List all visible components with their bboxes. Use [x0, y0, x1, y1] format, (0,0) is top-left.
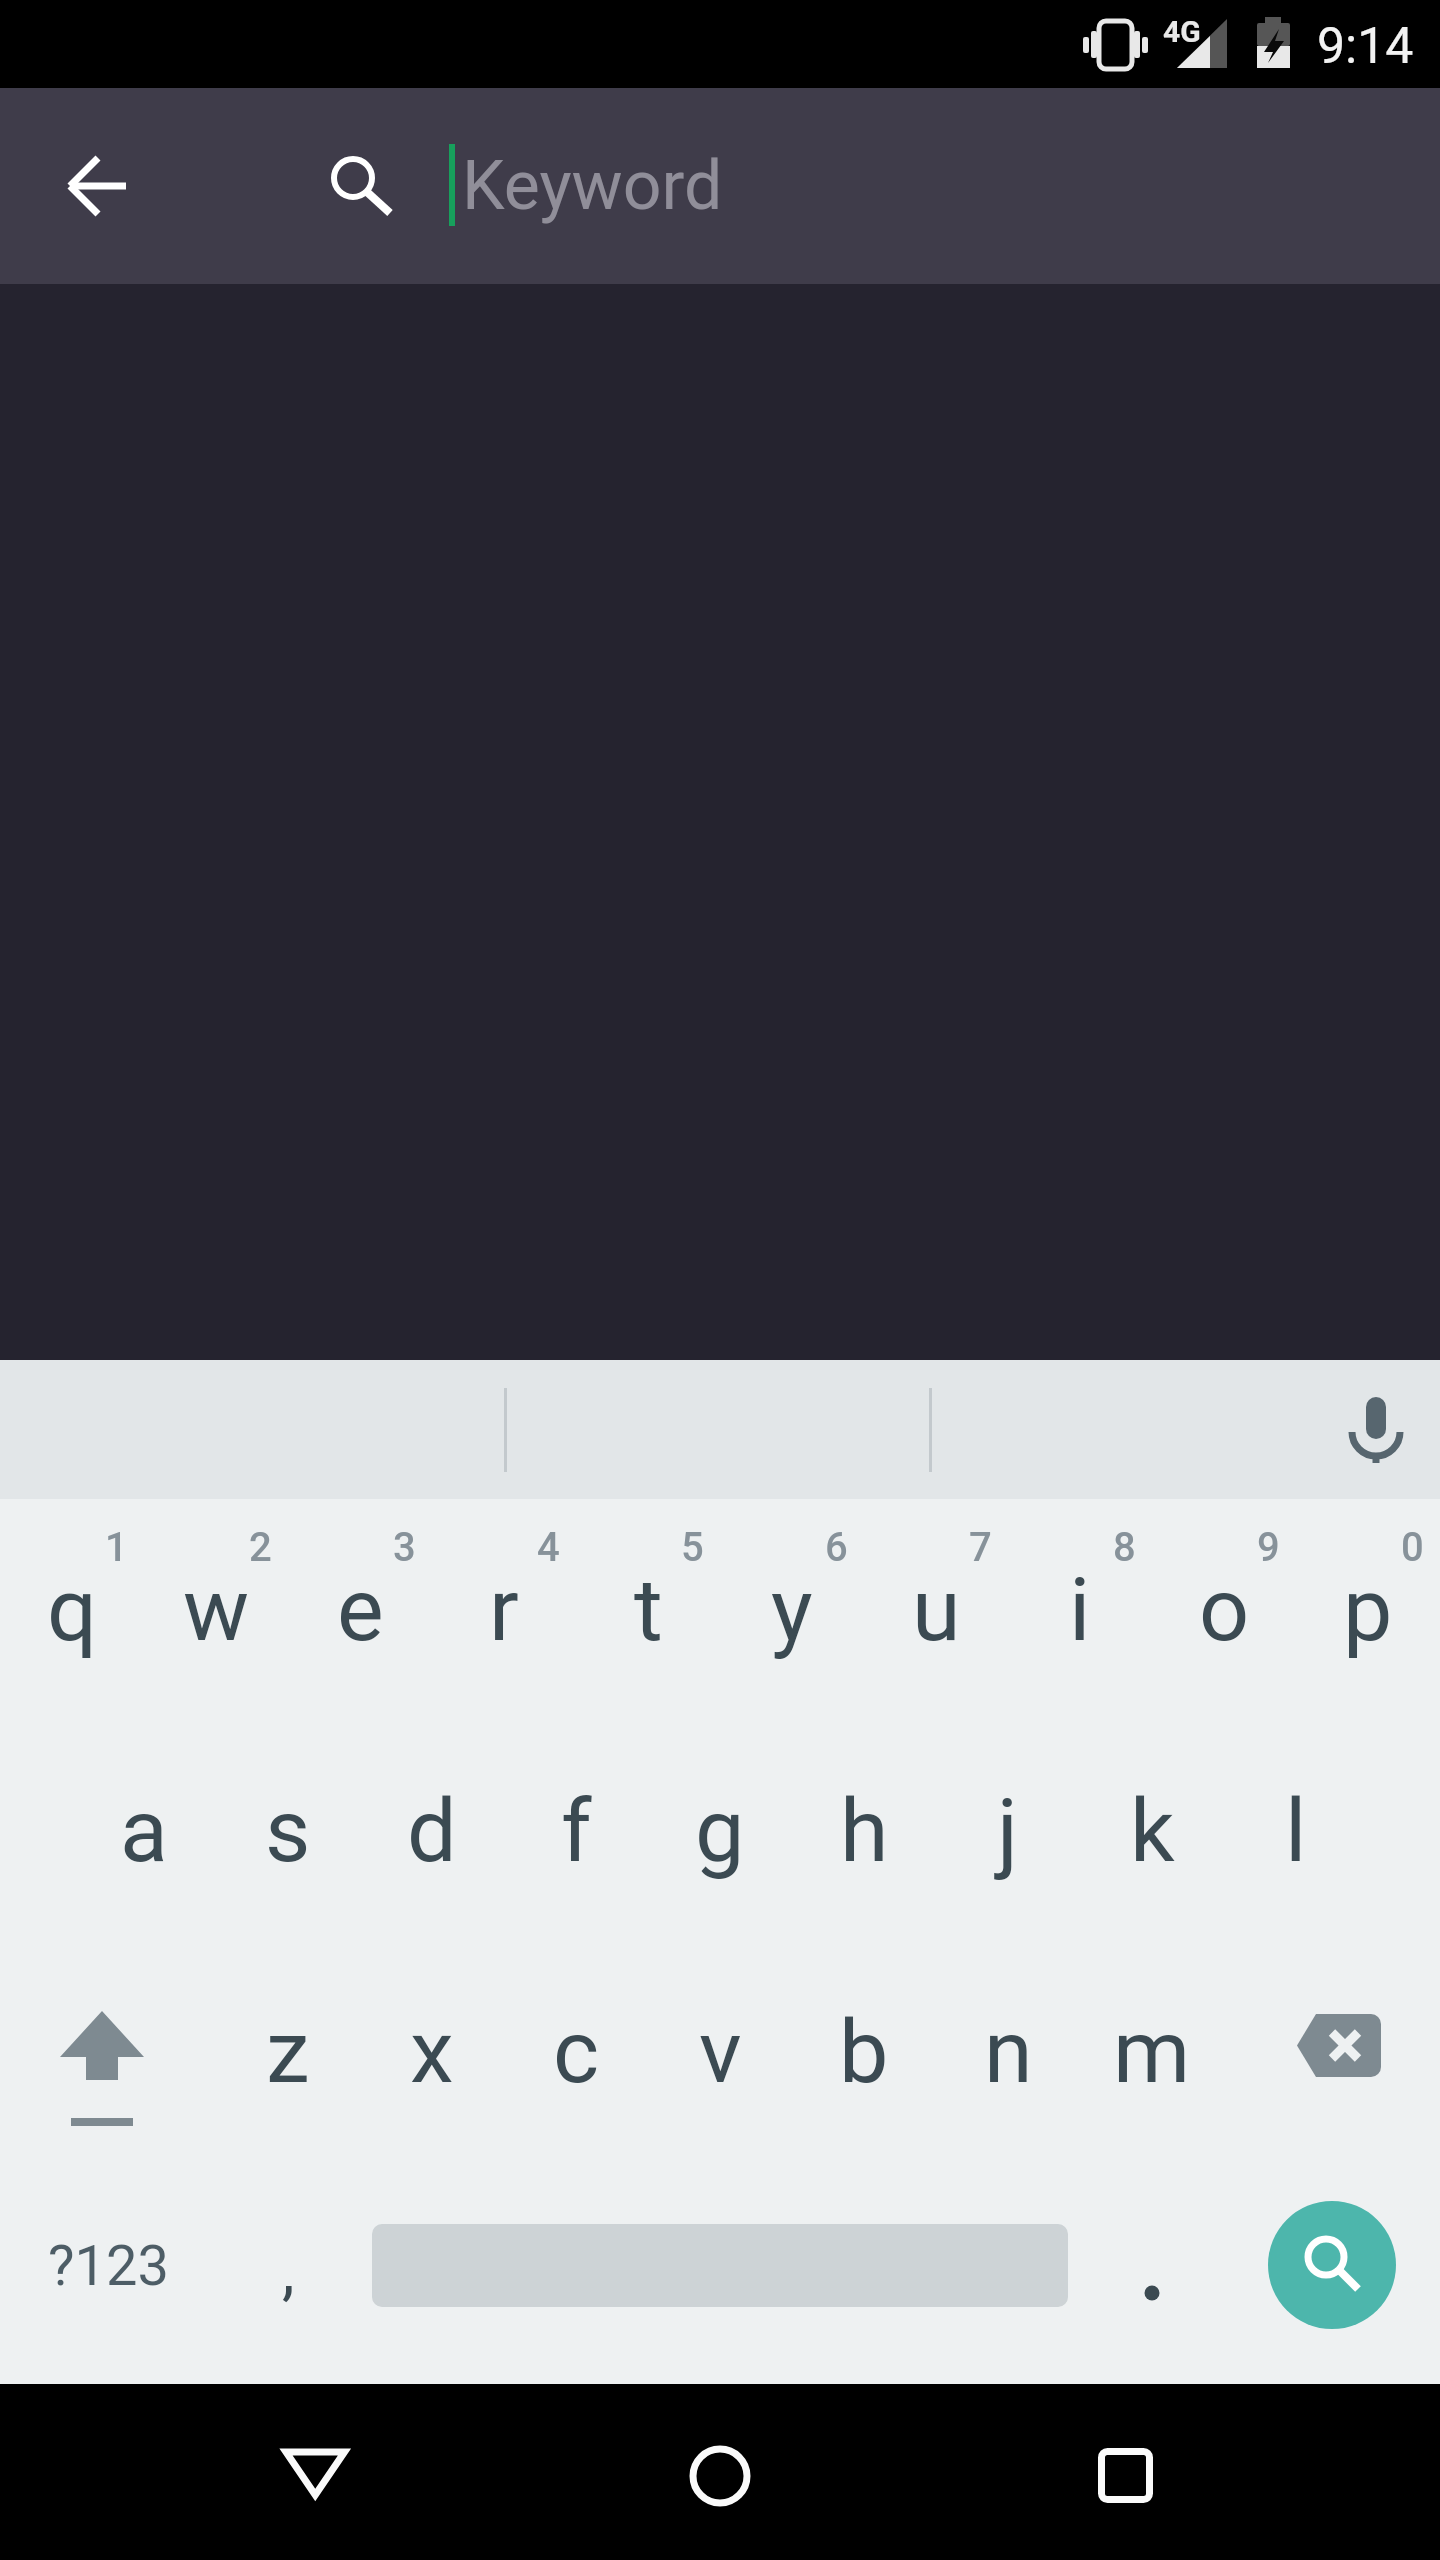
staticText: b [839, 2000, 889, 2103]
staticText: i [1069, 1558, 1091, 1661]
button[interactable]: , [216, 2162, 360, 2384]
button[interactable]: c [504, 1941, 648, 2162]
staticText: 7 [969, 1524, 992, 1571]
staticText: c [553, 2000, 600, 2103]
staticText: 4 [537, 1524, 560, 1571]
staticText: 0 [1401, 1524, 1424, 1571]
staticText: , [282, 2234, 295, 2309]
staticText: k [1130, 1779, 1175, 1882]
button[interactable]: ?123 [0, 2162, 216, 2384]
staticText: 9 [1257, 1524, 1280, 1571]
staticText: 4G [1163, 14, 1201, 49]
button[interactable]: e [288, 1499, 432, 1720]
button[interactable]: b [792, 1941, 936, 2162]
button[interactable]: w [144, 1499, 288, 1720]
button[interactable]: g [648, 1720, 792, 1941]
staticText: 3 [393, 1524, 416, 1571]
staticText: d [407, 1779, 457, 1882]
staticText: 8 [1113, 1524, 1136, 1571]
button[interactable]: y [720, 1499, 864, 1720]
button[interactable] [0, 1941, 216, 2162]
button[interactable]: x [360, 1941, 504, 2162]
button[interactable]: i [1008, 1499, 1152, 1720]
staticText: v [699, 2000, 742, 2103]
staticText: 1 [105, 1524, 128, 1571]
button[interactable] [1268, 2201, 1396, 2329]
staticText: m [1113, 2000, 1191, 2103]
button[interactable]: a [72, 1720, 216, 1941]
staticText: x [410, 2000, 454, 2103]
staticText: 9:14 [1317, 17, 1414, 76]
button[interactable]: q [0, 1499, 144, 1720]
staticText: s [265, 1779, 311, 1882]
button[interactable] [1080, 2162, 1224, 2384]
button[interactable] [1045, 2395, 1205, 2555]
button[interactable]: p [1296, 1499, 1440, 1720]
button[interactable]: l [1224, 1720, 1368, 1941]
button[interactable]: o [1152, 1499, 1296, 1720]
staticText: t [634, 1558, 663, 1661]
staticText: e [337, 1558, 384, 1661]
staticText: o [1199, 1558, 1250, 1661]
button[interactable] [1326, 1380, 1426, 1480]
button[interactable]: h [792, 1720, 936, 1941]
button[interactable]: j [936, 1720, 1080, 1941]
staticText: f [561, 1779, 592, 1882]
button[interactable]: t [576, 1499, 720, 1720]
staticText: g [695, 1779, 745, 1882]
button[interactable]: s [216, 1720, 360, 1941]
staticText: l [1285, 1779, 1307, 1882]
button[interactable]: v [648, 1941, 792, 2162]
staticText: y [771, 1558, 813, 1661]
button[interactable]: d [360, 1720, 504, 1941]
staticText: 5 [681, 1524, 704, 1571]
button[interactable]: m [1080, 1941, 1224, 2162]
staticText: 6 [825, 1524, 848, 1571]
staticText: z [266, 2000, 310, 2103]
button[interactable]: r [432, 1499, 576, 1720]
button[interactable]: u [864, 1499, 1008, 1720]
button[interactable] [640, 2395, 800, 2555]
button[interactable]: z [216, 1941, 360, 2162]
staticText: r [489, 1558, 519, 1661]
staticText: a [120, 1779, 168, 1882]
staticText: 2 [249, 1524, 272, 1571]
staticText: n [984, 2000, 1033, 2103]
button[interactable] [42, 130, 154, 242]
staticText: p [1343, 1558, 1393, 1661]
button[interactable]: n [936, 1941, 1080, 2162]
button[interactable]: Keyword [0, 88, 1440, 284]
staticText: w [183, 1558, 250, 1661]
button[interactable]: k [1080, 1720, 1224, 1941]
button[interactable] [237, 2395, 397, 2555]
button[interactable]: f [504, 1720, 648, 1941]
staticText: ?123 [48, 2233, 169, 2299]
staticText: Keyword [462, 146, 723, 226]
staticText: j [997, 1779, 1019, 1882]
staticText: q [47, 1558, 98, 1661]
staticText: u [912, 1558, 961, 1661]
button[interactable] [1224, 1941, 1440, 2162]
staticText: h [840, 1779, 889, 1882]
